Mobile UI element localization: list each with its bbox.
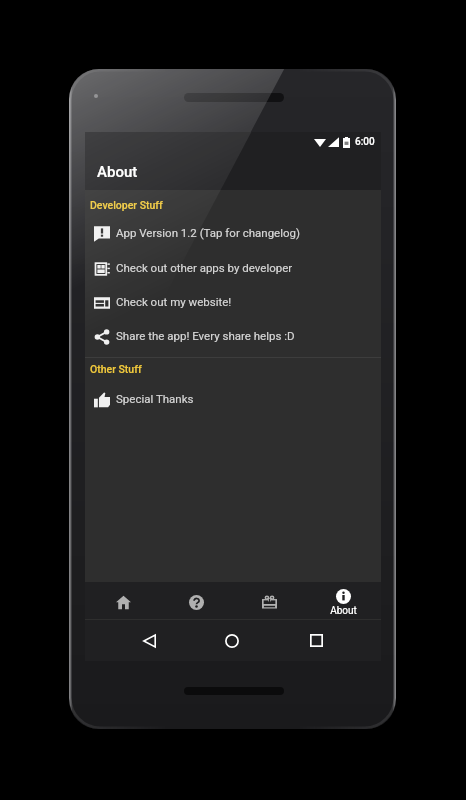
button[interactable]: Check out my website! xyxy=(85,286,381,321)
button[interactable]: Back xyxy=(139,620,159,661)
staticText: Check out my website! xyxy=(116,295,232,308)
staticText: Developer Stuff xyxy=(90,199,163,211)
staticText: About xyxy=(97,163,138,181)
staticText: 6:00 xyxy=(355,136,375,148)
button[interactable]: Home xyxy=(222,620,242,661)
button[interactable]: Share the app! Every share helps :D xyxy=(85,320,381,355)
button[interactable]: About xyxy=(85,152,381,191)
staticText: Other Stuff xyxy=(90,363,142,375)
button[interactable]: Special Thanks xyxy=(85,383,381,418)
button[interactable]: App Version 1.2 (Tap for changelog) xyxy=(85,217,381,252)
button[interactable]: Check out other apps by developer xyxy=(85,252,381,287)
button[interactable]: About xyxy=(313,582,373,619)
staticText: Special Thanks xyxy=(116,392,194,405)
staticText: Check out other apps by developer xyxy=(116,261,293,274)
staticText: About xyxy=(330,605,357,617)
button[interactable]: Help xyxy=(166,582,226,619)
staticText: Share the app! Every share helps :D xyxy=(116,329,295,342)
button[interactable]: Home xyxy=(93,582,153,619)
button[interactable]: Gifts xyxy=(239,582,299,619)
button[interactable]: Recents xyxy=(306,620,326,661)
staticText: App Version 1.2 (Tap for changelog) xyxy=(116,226,301,239)
